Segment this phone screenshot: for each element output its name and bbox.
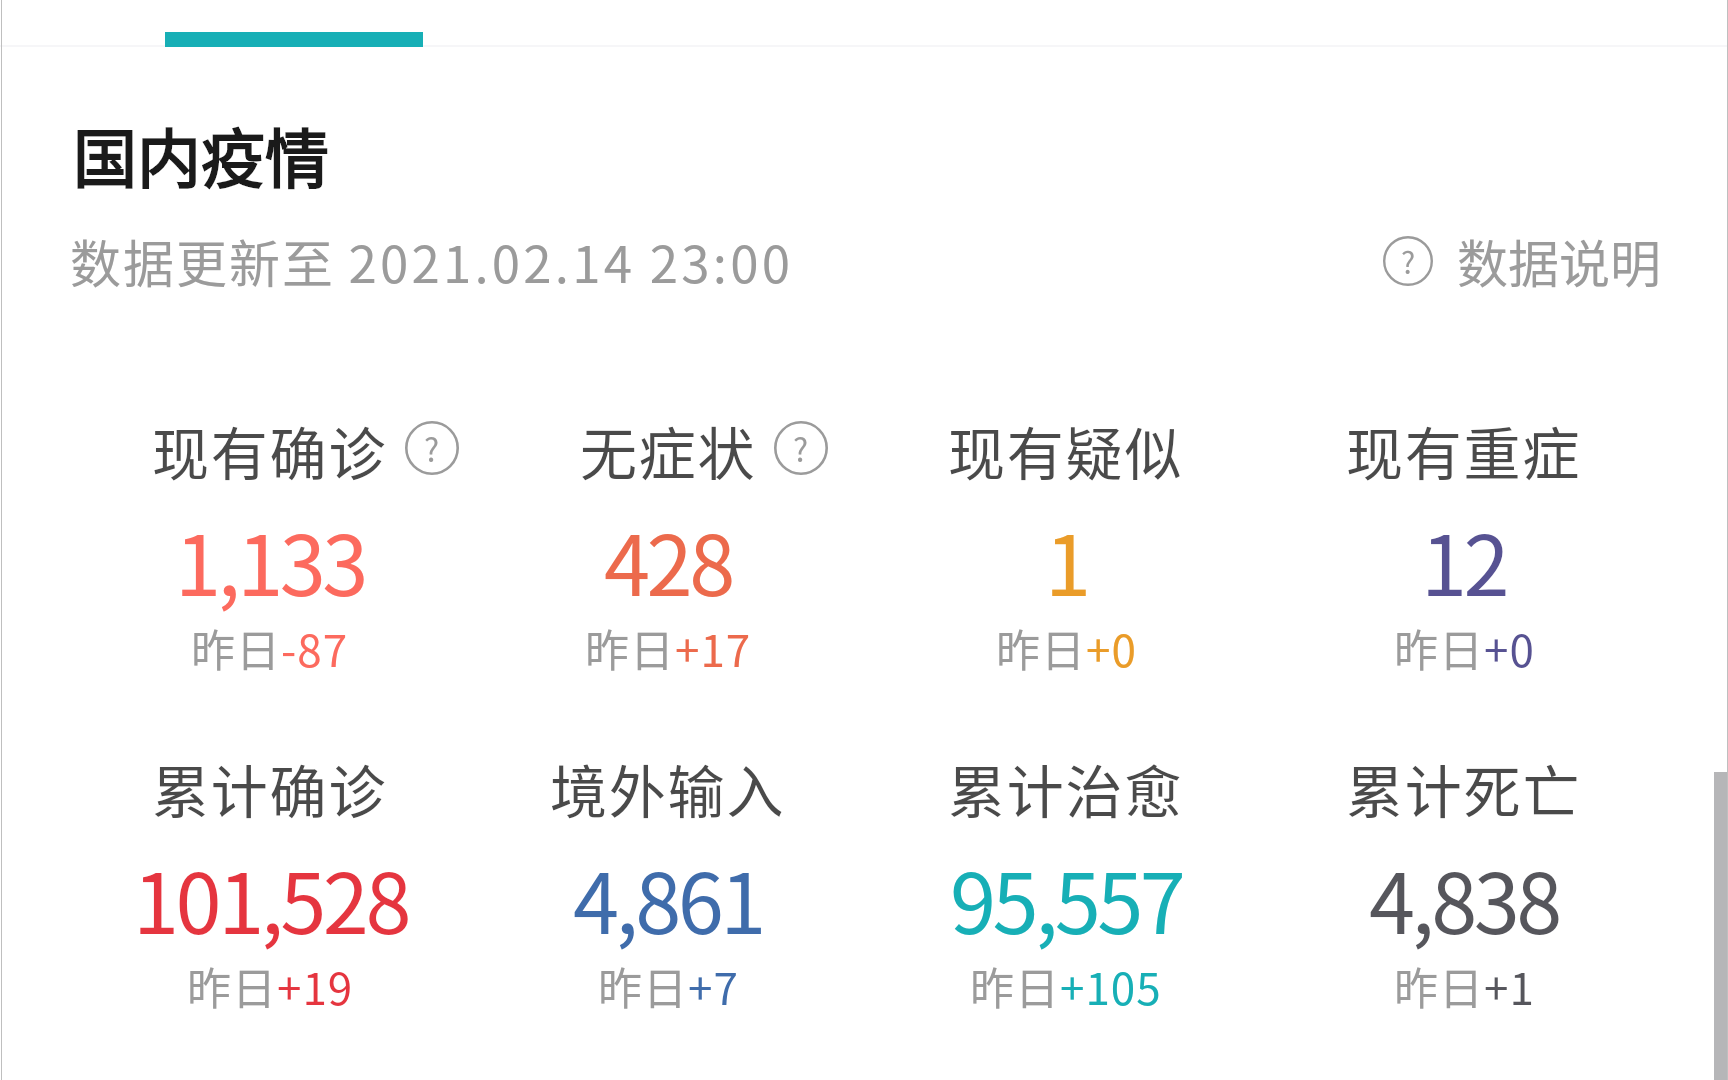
button[interactable]: 现有确诊: [71, 409, 469, 684]
staticText: 累计治愈: [948, 747, 1184, 830]
staticText: 1: [1045, 499, 1088, 620]
staticText: 428: [604, 499, 732, 620]
staticText: 昨日+1: [1394, 954, 1535, 1018]
button[interactable]: 现有确诊 指标说明: [405, 421, 459, 475]
staticText: 4,861: [573, 837, 763, 958]
staticText: 昨日-87: [191, 616, 349, 680]
button[interactable]: 累计死亡: [1265, 747, 1663, 1022]
staticText: ?: [424, 425, 440, 472]
button[interactable]: 无症状 指标说明: [774, 421, 828, 475]
staticText: ?: [793, 425, 809, 472]
button[interactable]: 国内疫情 标签: [165, 0, 423, 47]
staticText: 昨日+17: [585, 616, 752, 680]
staticText: 昨日+0: [1394, 616, 1535, 680]
button[interactable]: 无症状: [469, 409, 867, 684]
staticText: 昨日+0: [996, 616, 1137, 680]
staticText: 4,838: [1369, 837, 1559, 958]
button[interactable]: 累计治愈: [867, 747, 1265, 1022]
staticText: 昨日+19: [187, 954, 354, 1018]
button[interactable]: 现有疑似: [867, 409, 1265, 684]
staticText: 国内疫情: [73, 107, 329, 200]
staticText: 101,528: [133, 837, 408, 958]
staticText: 昨日+7: [598, 954, 739, 1018]
staticText: 累计确诊: [152, 747, 388, 830]
staticText: 现有重症: [1346, 409, 1582, 492]
staticText: 累计死亡: [1346, 747, 1582, 830]
staticText: 昨日+105: [970, 954, 1162, 1018]
staticText: 数据更新至 2021.02.14 23:00: [70, 224, 794, 298]
staticText: 数据说明: [1457, 224, 1662, 298]
staticText: 境外输入: [550, 747, 786, 830]
button[interactable]: 现有重症: [1265, 409, 1663, 684]
button[interactable]: 境外输入: [469, 747, 867, 1022]
staticText: 无症状: [580, 409, 757, 492]
button[interactable]: 累计确诊: [71, 747, 469, 1022]
staticText: 现有确诊: [152, 409, 388, 492]
staticText: 95,557: [950, 837, 1183, 958]
staticText: ?: [1401, 239, 1416, 283]
staticText: 1,133: [175, 499, 365, 620]
button[interactable]: ?: [1383, 224, 1662, 298]
staticText: 现有疑似: [948, 409, 1184, 492]
staticText: 12: [1421, 499, 1507, 620]
